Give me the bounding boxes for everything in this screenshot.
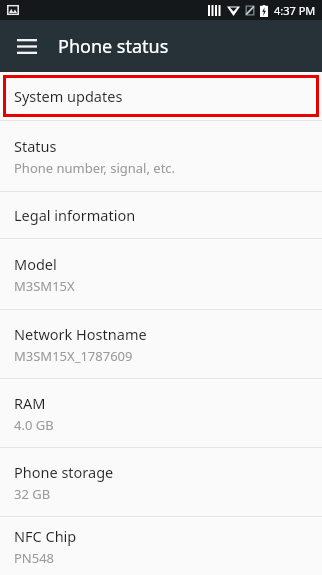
staticText: NFC Chip <box>14 526 77 546</box>
staticText: 32 GB <box>14 485 51 503</box>
staticText: M3SM15X_1787609 <box>14 347 133 365</box>
button[interactable]: Model <box>0 239 322 309</box>
staticText: Phone number, signal, etc. <box>14 159 176 177</box>
staticText: M3SM15X <box>14 277 75 295</box>
button[interactable]: Open navigation menu <box>9 28 45 64</box>
staticText: 4.0 GB <box>14 416 54 434</box>
staticText: Model <box>14 254 57 274</box>
staticText: PN548 <box>14 549 55 567</box>
staticText: Phone storage <box>14 462 114 482</box>
button[interactable]: RAM <box>0 379 322 447</box>
button[interactable]: Phone storage <box>0 448 322 516</box>
staticText: Phone status <box>58 34 169 59</box>
button[interactable]: System updates <box>3 75 319 117</box>
button[interactable]: Network Hostname <box>0 310 322 378</box>
button[interactable]: Status <box>0 121 322 191</box>
staticText: Legal information <box>14 205 136 225</box>
staticText: Status <box>14 136 57 156</box>
button[interactable]: NFC Chip <box>0 517 322 575</box>
staticText: 4:37 PM <box>274 3 316 18</box>
button[interactable]: Legal information <box>0 192 322 238</box>
staticText: RAM <box>14 393 46 413</box>
staticText: System updates <box>14 86 123 106</box>
staticText: Network Hostname <box>14 324 147 344</box>
